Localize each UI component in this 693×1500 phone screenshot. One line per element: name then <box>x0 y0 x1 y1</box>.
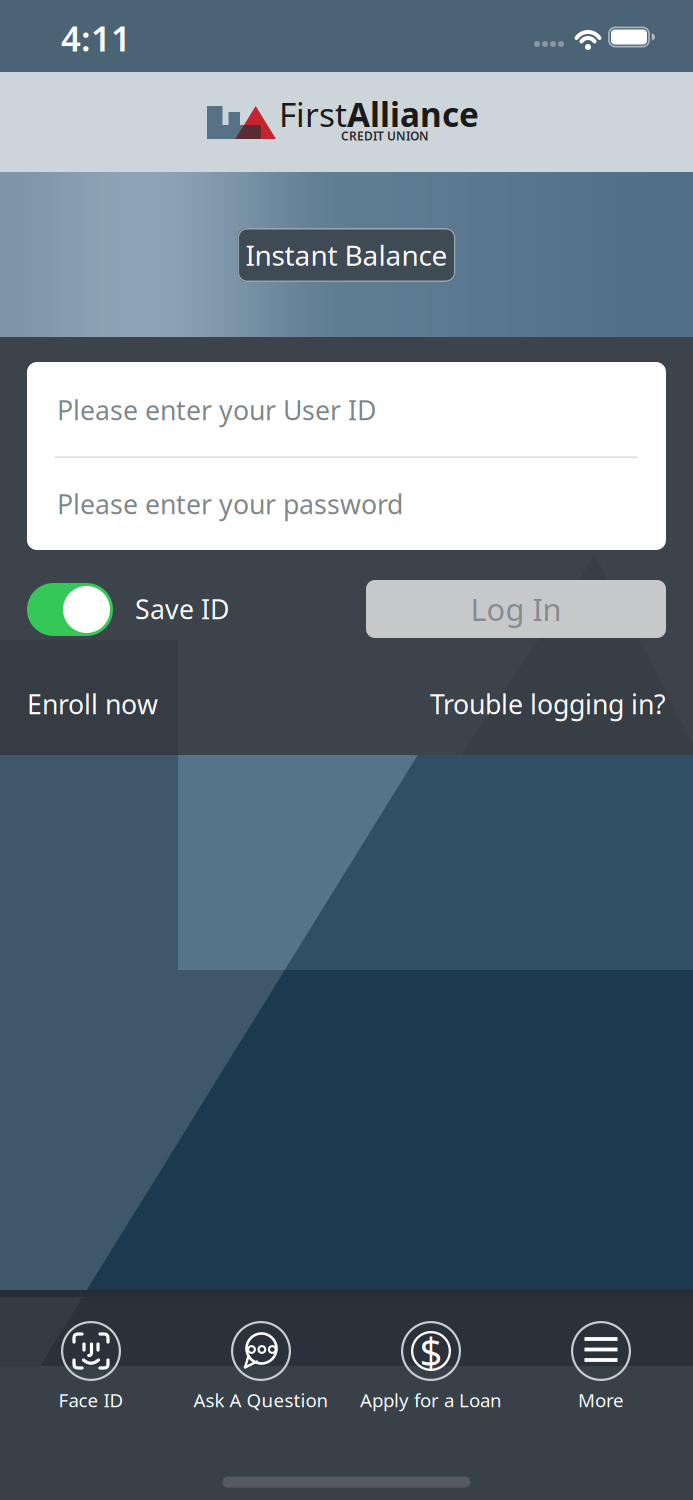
staticText: Please enter your password <box>57 486 403 522</box>
button[interactable]: Save ID <box>27 583 113 636</box>
button[interactable]: Instant Balance <box>237 228 455 282</box>
button[interactable]: $ <box>348 1298 514 1438</box>
button[interactable]: Password <box>57 459 640 549</box>
button[interactable]: Enroll now <box>27 684 327 724</box>
button[interactable]: User ID <box>57 365 640 455</box>
button[interactable]: Ask A Question <box>178 1298 344 1438</box>
staticText: Alliance <box>347 92 479 136</box>
staticText: Log In <box>470 589 561 629</box>
staticText: Please enter your User ID <box>57 392 376 428</box>
staticText: $ <box>419 1324 442 1377</box>
button[interactable]: Face ID <box>8 1298 174 1438</box>
button[interactable]: Log In <box>366 580 666 638</box>
button[interactable]: More <box>518 1298 684 1438</box>
staticText: Enroll now <box>27 686 158 722</box>
staticText: Save ID <box>135 591 229 627</box>
staticText: Instant Balance <box>245 236 447 274</box>
staticText: Apply for a Loan <box>360 1388 502 1412</box>
staticText: More <box>578 1388 624 1412</box>
staticText: Face ID <box>58 1388 123 1412</box>
staticText: Trouble logging in? <box>430 686 666 722</box>
button[interactable]: Trouble logging in? <box>366 684 666 724</box>
staticText: Ask A Question <box>193 1388 328 1412</box>
staticText: CREDIT UNION <box>341 128 429 144</box>
staticText: First <box>279 92 347 136</box>
staticText: 4:11 <box>61 15 131 61</box>
